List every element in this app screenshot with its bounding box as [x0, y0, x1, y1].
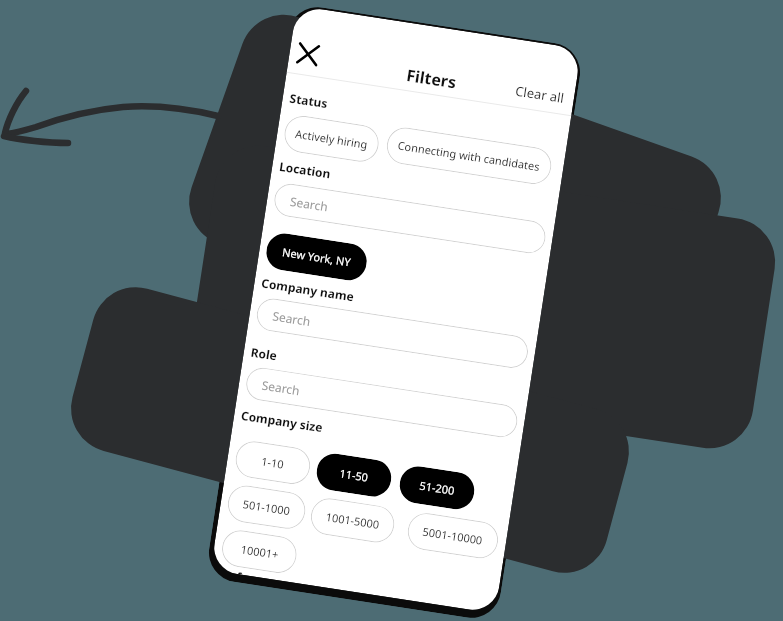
staticText: Search	[271, 307, 311, 329]
button[interactable]: 51-200	[397, 464, 477, 512]
staticText: 1001-5000	[325, 509, 380, 532]
button[interactable]: 10001+	[219, 528, 299, 575]
button[interactable]: Actively hiring	[282, 113, 381, 164]
staticText: Preference	[217, 565, 283, 581]
button[interactable]: New York, NY	[264, 231, 369, 283]
button[interactable]: Close	[296, 42, 320, 66]
staticText: 11-50	[338, 465, 369, 485]
staticText: 10001+	[240, 541, 280, 562]
button[interactable]: Clear all	[512, 81, 567, 107]
button[interactable]: 1-10	[233, 439, 313, 487]
staticText: New York, NY	[281, 244, 352, 269]
staticText: Role	[250, 344, 279, 363]
staticText: 51-200	[419, 478, 456, 498]
staticText: Search	[261, 377, 301, 398]
button[interactable]: 501-1000	[225, 483, 308, 531]
staticText: Connecting with candidates	[397, 137, 541, 174]
button[interactable]: Search	[254, 296, 530, 370]
staticText: 501-1000	[242, 496, 291, 518]
staticText: Status	[289, 90, 330, 111]
staticText: Location	[278, 158, 332, 181]
button[interactable]: Search	[244, 365, 520, 439]
staticText: Filters	[287, 46, 575, 111]
staticText: Search	[289, 193, 329, 214]
button[interactable]: Search	[272, 181, 548, 256]
staticText: Company size	[240, 407, 325, 435]
staticText: Clear all	[514, 82, 565, 107]
staticText: 5001-10000	[422, 524, 484, 548]
button[interactable]: Connecting with candidates	[384, 125, 554, 187]
staticText: Actively hiring	[294, 126, 369, 152]
button[interactable]: 5001-10000	[405, 510, 501, 561]
staticText: 1-10	[260, 453, 285, 472]
staticText: Company name	[260, 274, 356, 304]
button[interactable]: 1001-5000	[308, 496, 397, 545]
button[interactable]: 11-50	[314, 451, 394, 499]
